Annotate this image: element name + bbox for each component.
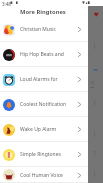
- staticText: Hip Hop Beats and: [20, 51, 64, 58]
- button[interactable]: Loud Alarms for: [0, 67, 103, 92]
- button[interactable]: Wake Up Alarm: [0, 117, 103, 142]
- button[interactable]: Coolest Notification: [0, 92, 103, 117]
- staticText: Wake Up Alarm: [20, 126, 57, 133]
- staticText: More Ringtones: [20, 8, 66, 16]
- button[interactable]: Simple Ringtones: [0, 142, 103, 167]
- staticText: Christian Music: [20, 26, 57, 33]
- staticText: 3:48: [2, 1, 11, 7]
- staticText: Simple Ringtones: [20, 151, 61, 158]
- button[interactable]: Hip Hop Beats and: [0, 42, 103, 67]
- button[interactable]: Cool Human Voice: [0, 167, 103, 183]
- staticText: Loud Alarms for: [20, 76, 58, 83]
- button[interactable]: Christian Music: [0, 17, 103, 42]
- staticText: Coolest Notification: [20, 101, 67, 108]
- staticText: Cool Human Voice: [20, 172, 63, 179]
